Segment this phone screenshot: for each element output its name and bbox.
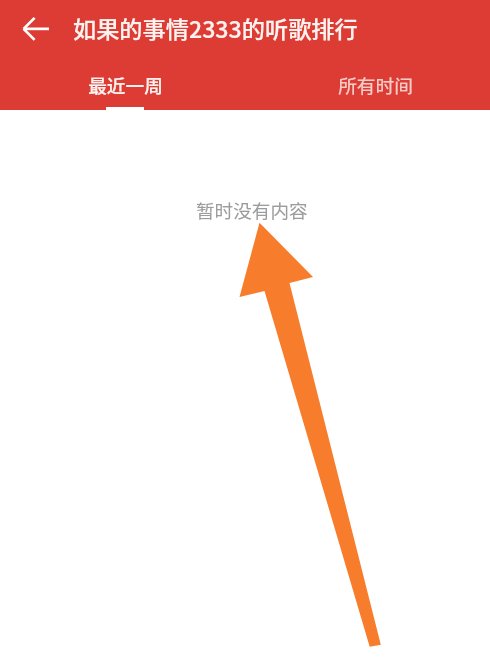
staticText: 最近一周	[88, 71, 163, 98]
staticText: 所有时间	[338, 71, 413, 98]
button[interactable]: Back	[9, 9, 49, 49]
button[interactable]: 所有时间	[305, 62, 445, 110]
staticText: 暂时没有内容	[196, 196, 308, 223]
button[interactable]: 最近一周	[55, 62, 195, 110]
staticText: 如果的事情2333的听歌排行	[73, 11, 358, 45]
